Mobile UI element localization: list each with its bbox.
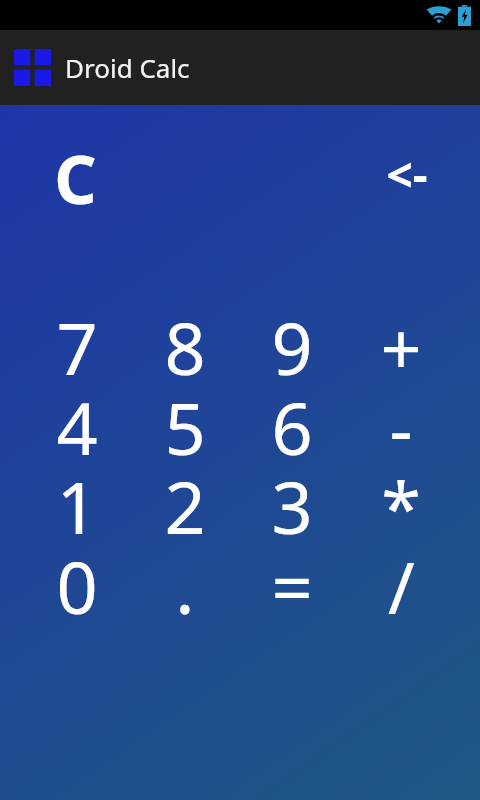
button[interactable]: 4 [24,378,130,458]
staticText: 0 [56,537,98,617]
staticText: 1 [56,457,98,537]
staticText: - [389,378,413,458]
button[interactable]: + [348,298,454,378]
staticText: 6 [271,378,313,458]
staticText: = [271,537,313,617]
staticText: 4 [56,378,98,458]
button[interactable]: - [348,378,454,458]
other: App icon [14,49,51,86]
button[interactable]: 3 [239,457,345,537]
staticText: / [388,537,415,617]
staticText: Droid Calc [65,50,190,85]
button[interactable]: 5 [132,378,238,458]
staticText: 9 [271,298,313,378]
button[interactable]: = [239,537,345,617]
staticText: * [381,457,421,537]
staticText: + [380,298,422,378]
button[interactable]: 6 [239,378,345,458]
staticText: . [175,537,195,617]
staticText: <- [386,143,428,206]
button[interactable]: Clear [22,133,128,213]
button[interactable]: * [348,457,454,537]
button[interactable]: Backspace [354,134,460,214]
button[interactable]: 9 [239,298,345,378]
staticText: 2 [164,457,206,537]
staticText: 7 [56,298,98,378]
staticText: 5 [164,378,206,458]
button[interactable]: / [348,537,454,617]
button[interactable]: 1 [24,457,130,537]
button[interactable]: 7 [24,298,130,378]
staticText: 8 [164,298,206,378]
button[interactable]: 8 [132,298,238,378]
staticText: 3 [271,457,313,537]
staticText: C [54,133,97,213]
button[interactable]: 0 [24,537,130,617]
button[interactable]: 2 [132,457,238,537]
button[interactable]: . [132,537,238,617]
